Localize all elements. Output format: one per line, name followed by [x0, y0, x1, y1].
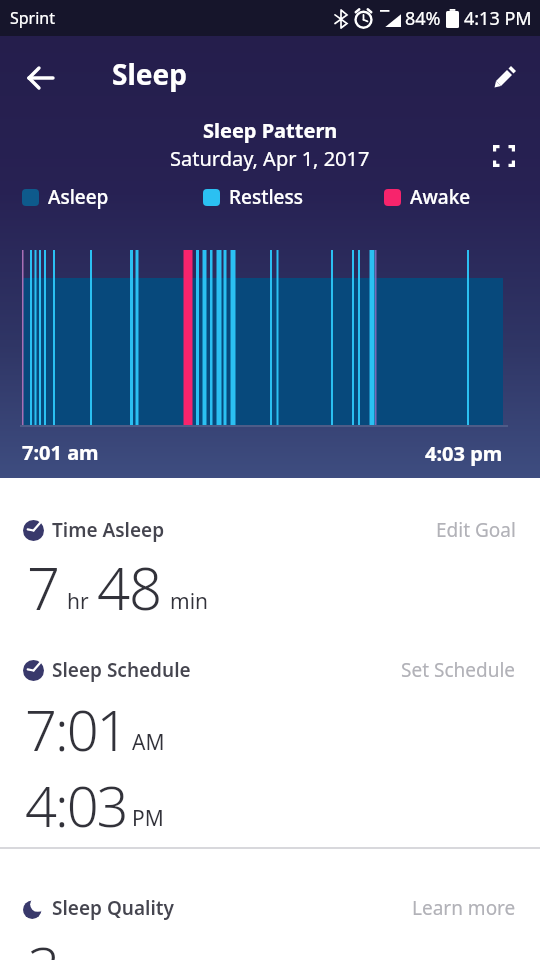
staticText: 3: [28, 928, 60, 960]
staticText: hr: [67, 587, 89, 616]
staticText: 4:13 PM: [464, 6, 532, 31]
staticText: Sleep Pattern: [203, 117, 338, 144]
staticText: Learn more: [412, 895, 516, 921]
staticText: Restless: [229, 184, 303, 210]
staticText: Time Asleep: [52, 517, 165, 543]
staticText: min: [170, 587, 209, 616]
staticText: Edit Goal: [436, 517, 516, 543]
staticText: Awake: [410, 184, 471, 210]
staticText: 4:03: [25, 767, 127, 843]
staticText: PM: [132, 804, 164, 833]
staticText: Sleep: [112, 55, 187, 93]
staticText: 7: [27, 548, 60, 627]
staticText: AM: [132, 728, 165, 757]
button[interactable]: Edit Goal: [436, 517, 516, 543]
button[interactable]: [486, 138, 522, 174]
staticText: Set Schedule: [401, 657, 516, 683]
staticText: Sprint: [10, 7, 56, 29]
staticText: 7:01: [25, 691, 127, 767]
staticText: Saturday, Apr 1, 2017: [170, 145, 370, 172]
staticText: 4:03 pm: [425, 440, 503, 467]
staticText: Asleep: [48, 184, 109, 210]
staticText: 48: [97, 548, 162, 627]
button[interactable]: [20, 58, 62, 98]
button[interactable]: Learn more: [412, 895, 516, 921]
button[interactable]: Set Schedule: [401, 657, 516, 683]
staticText: 84%: [405, 6, 441, 31]
staticText: Sleep Quality: [52, 895, 174, 921]
staticText: 7:01 am: [22, 439, 99, 466]
button[interactable]: [482, 56, 526, 98]
staticText: Sleep Schedule: [52, 657, 191, 683]
